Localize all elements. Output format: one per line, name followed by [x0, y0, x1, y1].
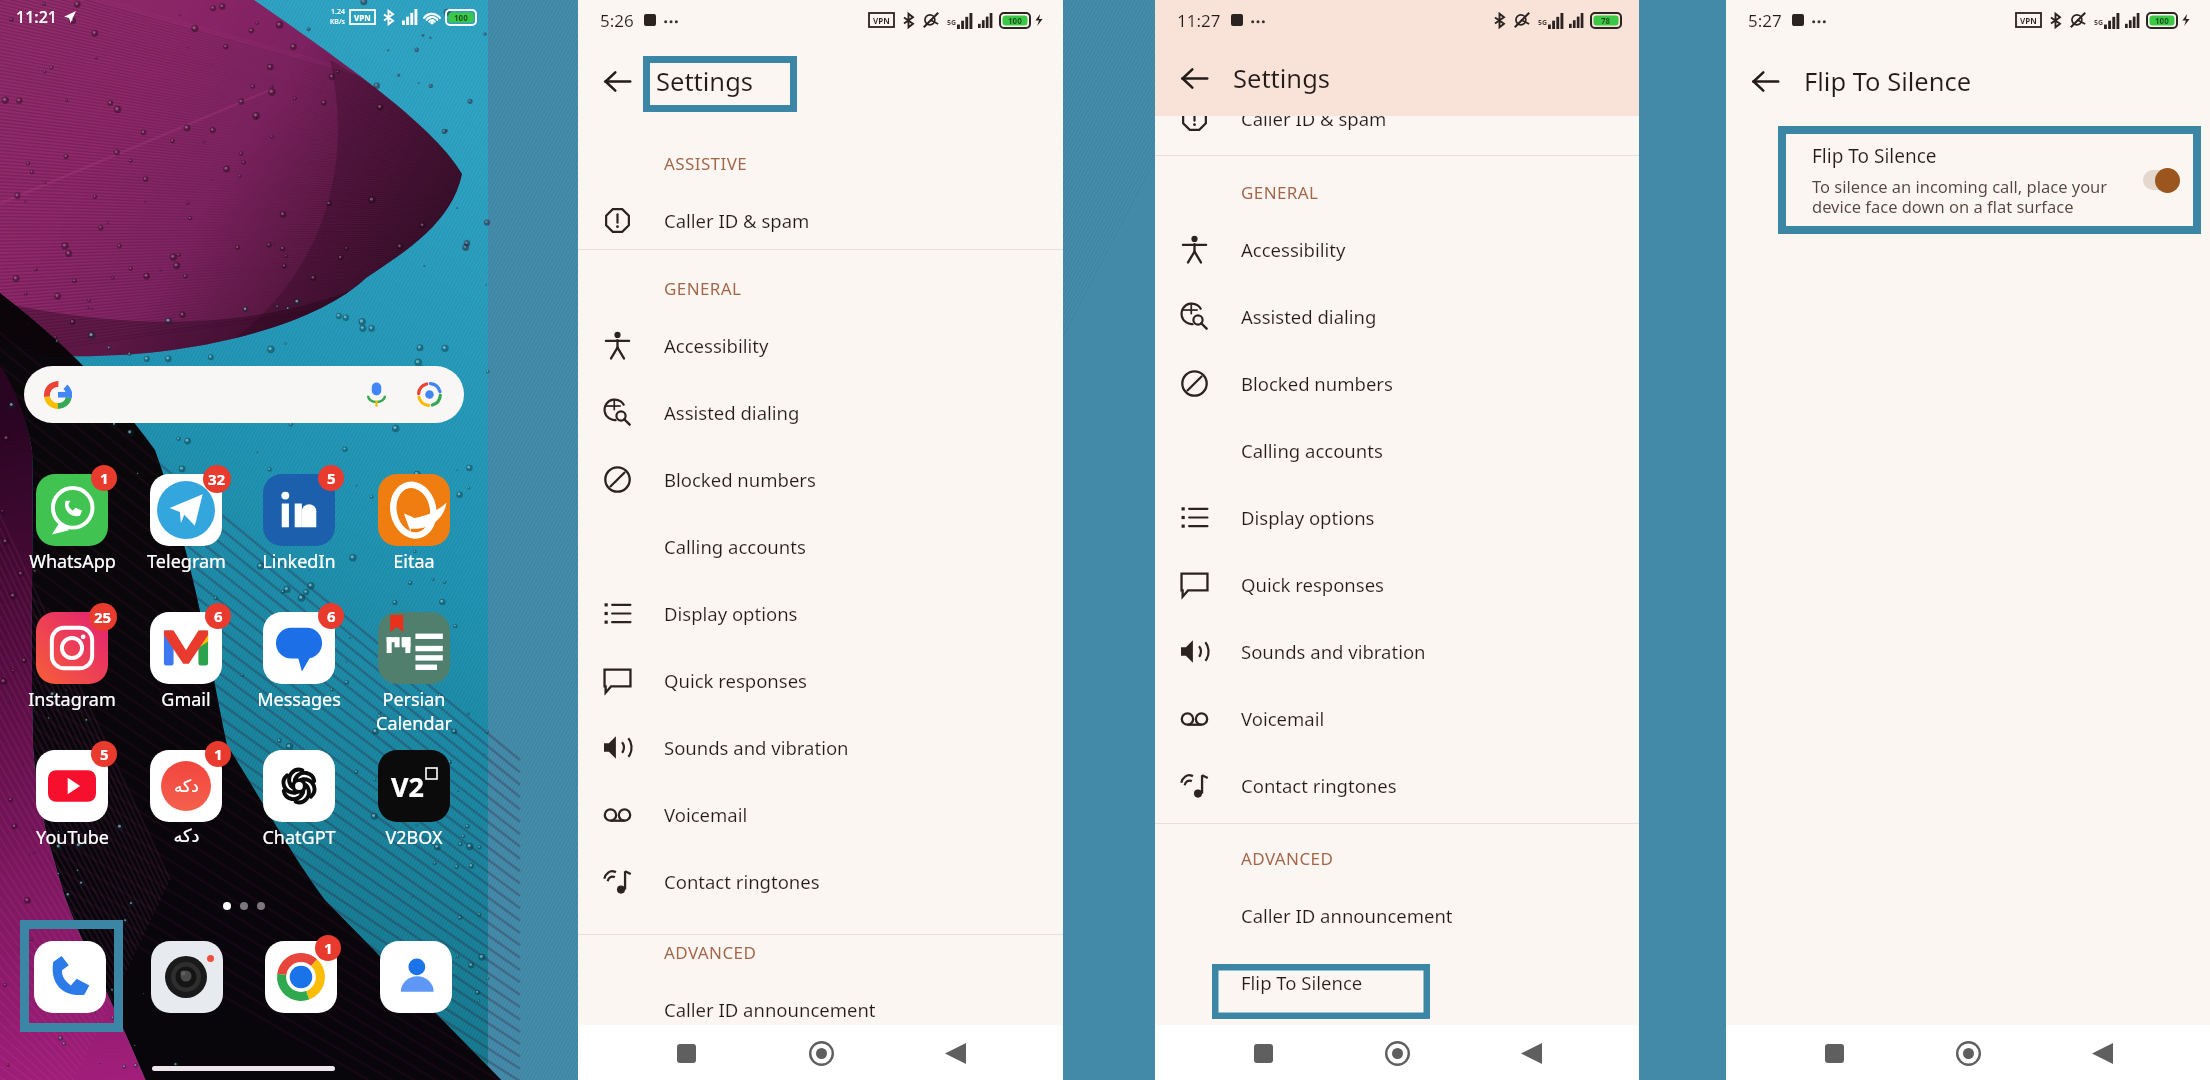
staticText: Sounds and vibration: [664, 735, 849, 760]
button[interactable]: Accessibility: [578, 312, 1063, 379]
button[interactable]: Sounds and vibration: [578, 714, 1063, 781]
staticText: ASSISTIVE: [664, 152, 748, 175]
staticText: دکه: [174, 776, 199, 796]
button[interactable]: Quick responses: [1155, 551, 1639, 618]
button[interactable]: Display options: [578, 580, 1063, 647]
button[interactable]: Caller ID announcement: [578, 976, 1063, 1043]
staticText: 5:26: [600, 9, 634, 32]
staticText: YouTube: [36, 825, 109, 850]
button[interactable]: Caller ID & spam: [1155, 97, 1639, 139]
button[interactable]: Sounds and vibration: [1155, 618, 1639, 685]
staticText: Display options: [664, 601, 798, 626]
staticText: Accessibility: [1241, 237, 1346, 262]
staticText: Sounds and vibration: [1241, 639, 1426, 664]
staticText: To silence an incoming call, place your …: [1812, 175, 2108, 218]
staticText: Settings: [1233, 61, 1331, 96]
staticText: 5: [327, 468, 336, 488]
button[interactable]: Recent apps: [1808, 1027, 1860, 1079]
staticText: GENERAL: [664, 277, 742, 300]
staticText: Settings: [656, 64, 754, 99]
button[interactable]: V2: [360, 750, 468, 850]
button[interactable]: Recent apps: [660, 1027, 712, 1079]
button[interactable]: Eitaa: [360, 474, 468, 574]
button[interactable]: 5: [245, 474, 353, 574]
staticText: 1: [324, 938, 333, 958]
button[interactable]: دکه: [132, 750, 240, 846]
staticText: Contact ringtones: [664, 869, 820, 894]
staticText: Eitaa: [393, 549, 435, 574]
staticText: KB/s: [330, 17, 345, 27]
staticText: 5G: [947, 18, 957, 28]
button[interactable]: Calling accounts: [1155, 417, 1639, 484]
staticText: Telegram: [147, 549, 226, 574]
staticText: V2BOX: [385, 825, 443, 850]
button[interactable]: 32: [132, 474, 240, 574]
staticText: 5:27: [1748, 9, 1782, 32]
staticText: Persian Calendar: [376, 687, 452, 735]
staticText: Caller ID & spam: [664, 208, 810, 233]
staticText: ChatGPT: [262, 825, 336, 850]
staticText: VPN: [2020, 15, 2037, 26]
staticText: Assisted dialing: [664, 400, 800, 425]
button[interactable]: Voicemail: [1155, 685, 1639, 752]
staticText: Messages: [257, 687, 341, 712]
button[interactable]: Recent apps: [1237, 1027, 1289, 1079]
button[interactable]: Caller ID & spam: [578, 187, 1063, 254]
staticText: VPN: [354, 12, 371, 23]
button[interactable]: 6: [132, 612, 240, 712]
button[interactable]: Back: [1155, 40, 1233, 116]
button[interactable]: Contact ringtones: [578, 848, 1063, 915]
staticText: Caller ID announcement: [1241, 903, 1453, 928]
button[interactable]: Persian Calendar: [360, 612, 468, 735]
staticText: 1: [100, 468, 109, 488]
staticText: Flip To Silence: [1241, 970, 1363, 995]
staticText: 11:27: [1177, 9, 1221, 32]
staticText: 1: [214, 744, 223, 764]
button[interactable]: Back: [2076, 1027, 2128, 1079]
button[interactable]: Voicemail: [578, 781, 1063, 848]
staticText: 5G: [2094, 18, 2104, 28]
button[interactable]: Display options: [1155, 484, 1639, 551]
button[interactable]: Flip To Silence: [1812, 133, 2188, 227]
button[interactable]: Home: [1942, 1027, 1994, 1079]
button[interactable]: 6: [245, 612, 353, 712]
staticText: 5G: [1538, 18, 1548, 28]
staticText: Caller ID & spam: [1241, 106, 1387, 131]
staticText: Instagram: [28, 687, 116, 712]
button[interactable]: Blocked numbers: [1155, 350, 1639, 417]
button[interactable]: ChatGPT: [245, 750, 353, 850]
button[interactable]: Contact ringtones: [1155, 752, 1639, 819]
button[interactable]: 1: [18, 474, 126, 574]
button[interactable]: Back: [1505, 1027, 1557, 1079]
button[interactable]: Calling accounts: [578, 513, 1063, 580]
staticText: Display options: [1241, 505, 1375, 530]
button[interactable]: Quick responses: [578, 647, 1063, 714]
staticText: 5: [100, 744, 109, 764]
button[interactable]: Accessibility: [1155, 216, 1639, 283]
staticText: 100: [2155, 15, 2169, 26]
button[interactable]: Back: [929, 1027, 981, 1079]
button[interactable]: Home: [1371, 1027, 1423, 1079]
button[interactable]: Assisted dialing: [578, 379, 1063, 446]
button[interactable]: Caller ID announcement: [1155, 882, 1639, 949]
button[interactable]: Back: [1726, 40, 1804, 122]
staticText: Calling accounts: [1241, 438, 1383, 463]
button[interactable]: Blocked numbers: [578, 446, 1063, 513]
button[interactable]: 25: [18, 612, 126, 712]
staticText: Accessibility: [664, 333, 769, 358]
button[interactable]: 5: [18, 750, 126, 850]
button[interactable]: Chrome: [265, 941, 337, 1013]
button[interactable]: Contacts: [380, 941, 452, 1013]
button[interactable]: Home: [795, 1027, 847, 1079]
staticText: Assisted dialing: [1241, 304, 1377, 329]
button[interactable]: Camera: [151, 941, 223, 1013]
button[interactable]: Back: [578, 40, 656, 122]
button[interactable]: [24, 366, 464, 423]
staticText: دکه: [173, 825, 200, 846]
staticText: V2: [391, 768, 424, 805]
button[interactable]: Flip To Silence: [1155, 949, 1639, 1016]
staticText: 78: [1601, 15, 1611, 26]
button[interactable]: Assisted dialing: [1155, 283, 1639, 350]
staticText: 6: [327, 606, 336, 626]
button[interactable]: Phone: [34, 941, 106, 1013]
